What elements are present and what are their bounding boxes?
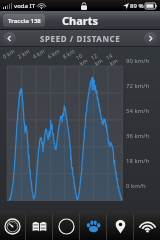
staticText: 6 km	[46, 47, 61, 60]
button[interactable]: Charts	[80, 213, 106, 240]
staticText: 72 km/h	[126, 82, 150, 90]
staticText: 54 km/h	[126, 107, 150, 115]
staticText: 90 km/h	[126, 57, 150, 65]
staticText: 2 km	[16, 47, 31, 60]
staticText: 10 km	[74, 47, 94, 67]
button[interactable]: Previous chart	[3, 32, 16, 45]
staticText: SPEED / DISTANCE	[40, 33, 121, 44]
staticText: 36 km/h	[126, 132, 150, 140]
button[interactable]: Compass	[53, 213, 79, 240]
staticText: Traccia 138	[8, 17, 41, 25]
button[interactable]: Next chart	[144, 32, 157, 45]
button[interactable]: Dashboard	[0, 213, 25, 240]
button[interactable]: Map	[26, 213, 52, 240]
staticText: Charts	[62, 13, 99, 28]
staticText: 18 km/h	[126, 157, 150, 165]
button[interactable]: Places	[107, 213, 133, 240]
button[interactable]: Traccia 138	[3, 14, 45, 27]
staticText: 12 km	[89, 47, 109, 67]
staticText: 0 km/h	[126, 182, 146, 190]
staticText: 0 km	[1, 47, 16, 60]
button[interactable]: Share	[134, 213, 160, 240]
staticText: 89 %	[130, 2, 144, 10]
staticText: 4 km	[31, 47, 46, 60]
staticText: 14 km	[104, 47, 124, 67]
staticText: voda IT	[14, 2, 36, 10]
staticText: 8 km	[61, 47, 76, 60]
